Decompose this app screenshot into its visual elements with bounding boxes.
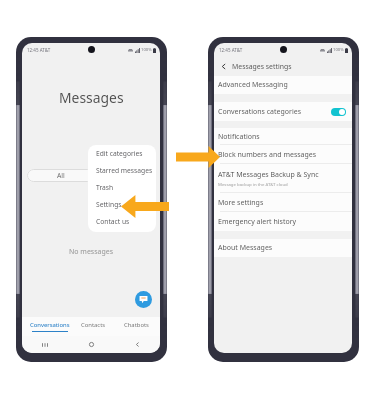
staticText: Conversations categories [218, 107, 302, 117]
button[interactable]: Edit categories [88, 145, 156, 162]
button[interactable]: Recents [22, 336, 68, 353]
staticText: Advanced Messaging [218, 80, 288, 90]
staticText: Settings [96, 200, 122, 209]
button[interactable]: Home [68, 336, 114, 353]
button[interactable]: Back [219, 62, 228, 71]
staticText: 100% [141, 47, 152, 53]
staticText: Contact us [96, 217, 130, 226]
staticText: Messages [59, 88, 124, 107]
staticText: Contacts [81, 321, 106, 329]
staticText: Edit categories [96, 149, 143, 158]
button[interactable]: Contacts [71, 317, 114, 336]
button[interactable]: About Messages [214, 239, 352, 257]
button[interactable]: Conversations [28, 317, 71, 336]
button[interactable]: Notifications [214, 128, 352, 145]
staticText: Block numbers and messages [218, 150, 317, 160]
button[interactable]: Contact us [88, 213, 156, 230]
button[interactable]: Block numbers and messages [214, 145, 352, 164]
staticText: More settings [218, 198, 264, 208]
button[interactable]: Starred messages [88, 162, 156, 179]
button[interactable]: More settings [214, 193, 352, 212]
staticText: About Messages [218, 243, 273, 253]
staticText: AT&T Messages Backup & Sync [218, 170, 319, 180]
staticText: 12:45 AT&T [219, 47, 243, 53]
staticText: Emergency alert history [218, 217, 297, 227]
button[interactable]: Trash [88, 179, 156, 196]
button[interactable]: Chatbots [114, 317, 157, 336]
button[interactable]: Conversations categories [214, 102, 352, 121]
staticText: 12:45 AT&T [27, 47, 51, 53]
staticText: Message backup in the AT&T cloud [218, 181, 288, 187]
button[interactable]: Back [114, 336, 160, 353]
staticText: Conversations [30, 321, 70, 329]
button[interactable]: AT&T Messages Backup & Sync [214, 164, 352, 193]
staticText: Starred messages [96, 166, 153, 175]
staticText: No messages [69, 247, 114, 257]
button[interactable]: Emergency alert history [214, 212, 352, 231]
button[interactable]: Advanced Messaging [214, 76, 352, 94]
button[interactable]: Settings [88, 196, 156, 213]
button[interactable]: New conversation [135, 291, 152, 308]
staticText: All [57, 171, 65, 180]
staticText: Trash [96, 183, 114, 192]
button[interactable]: All [27, 169, 94, 182]
staticText: Chatbots [124, 321, 149, 329]
staticText: Notifications [218, 132, 260, 142]
staticText: Messages settings [232, 62, 292, 71]
staticText: 100% [333, 47, 344, 53]
